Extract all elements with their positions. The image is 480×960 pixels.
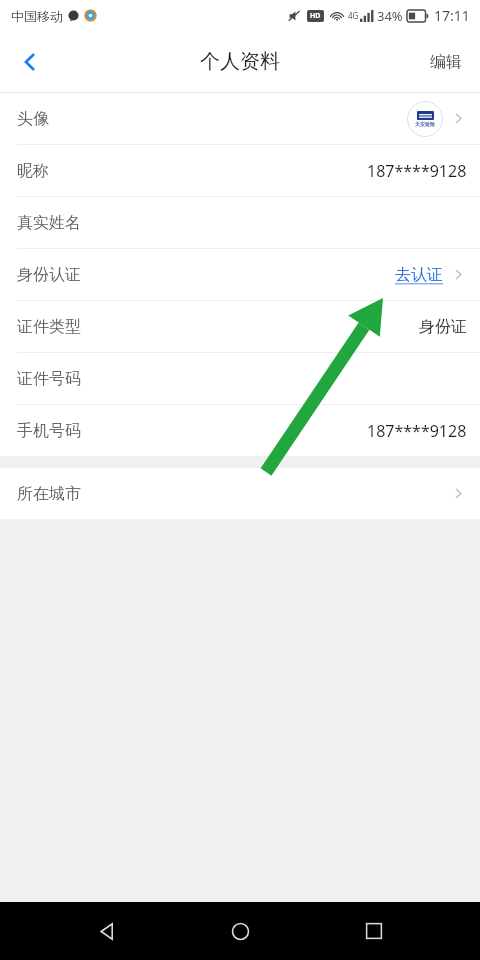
button[interactable]: 证件号码 — [0, 353, 480, 405]
staticText: 身份证 — [419, 317, 467, 337]
staticText: 昵称 — [17, 161, 49, 181]
button[interactable]: 身份认证 — [0, 249, 480, 301]
staticText: 头像 — [17, 109, 49, 129]
staticText: 187****9128 — [367, 160, 467, 182]
button[interactable]: 编辑 — [412, 38, 480, 86]
staticText: 证件类型 — [17, 317, 81, 337]
staticText: 所在城市 — [17, 484, 81, 504]
staticText: 手机号码 — [17, 421, 81, 441]
button[interactable]: Back — [78, 903, 134, 959]
staticText: 187****9128 — [367, 420, 467, 442]
button[interactable]: 证件类型 — [0, 301, 480, 353]
button[interactable]: 头像 — [0, 93, 480, 145]
button[interactable]: 真实姓名 — [0, 197, 480, 249]
staticText: 个人资料 — [200, 49, 280, 74]
staticText: 4G — [348, 10, 359, 21]
staticText: 证件号码 — [17, 369, 81, 389]
button[interactable]: 所在城市 — [0, 468, 480, 519]
staticText: 身份认证 — [17, 265, 81, 285]
button[interactable]: 手机号码 — [0, 405, 480, 456]
staticText: 去认证 — [395, 265, 443, 285]
staticText: HD — [310, 11, 321, 21]
staticText: 编辑 — [430, 52, 462, 72]
staticText: 真实姓名 — [17, 213, 81, 233]
button[interactable]: Recents — [346, 903, 402, 959]
staticText: 34% — [377, 7, 403, 25]
staticText: 天安财险 — [415, 121, 435, 127]
staticText: 17:11 — [434, 6, 470, 25]
button[interactable]: Home — [212, 903, 268, 959]
button[interactable]: Back — [6, 38, 54, 86]
staticText: 中国移动 — [11, 8, 63, 24]
button[interactable]: 昵称 — [0, 145, 480, 197]
